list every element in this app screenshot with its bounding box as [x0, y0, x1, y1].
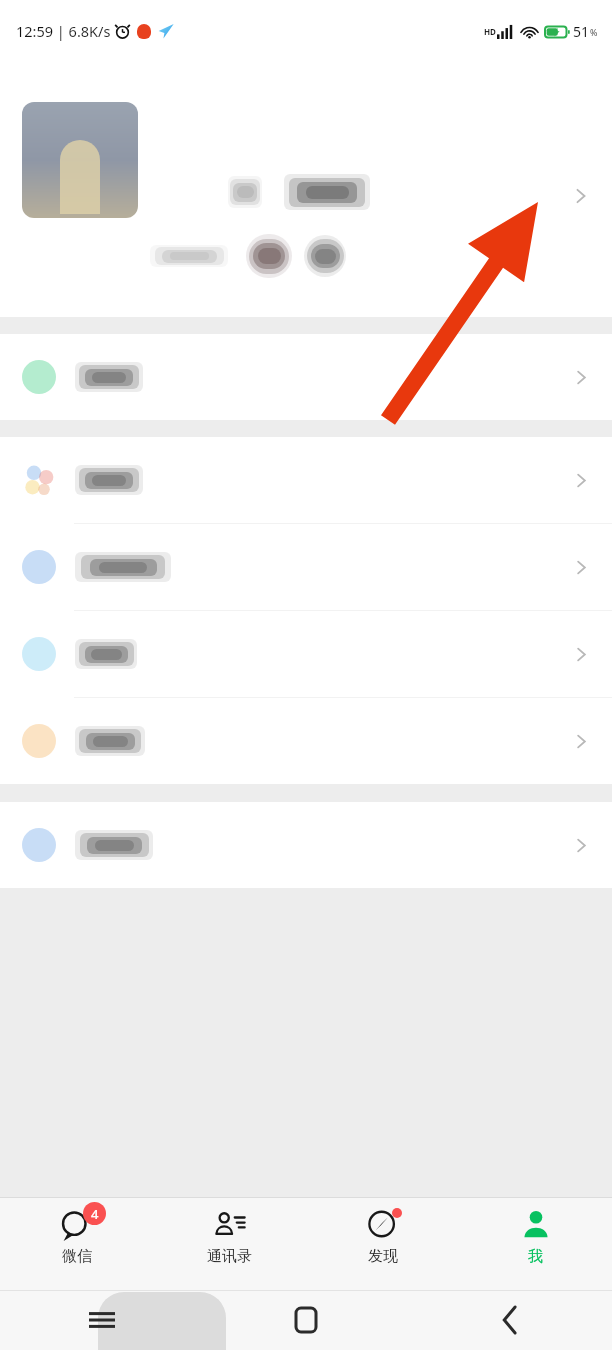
- button[interactable]: 发现: [306, 1198, 459, 1290]
- staticText: 51: [573, 22, 590, 41]
- button[interactable]: 4: [0, 1198, 153, 1290]
- staticText: 通讯录: [207, 1247, 252, 1266]
- button[interactable]: 我: [459, 1198, 612, 1290]
- button[interactable]: [0, 611, 612, 697]
- staticText: 12:59 | 6.8K/s: [16, 21, 111, 41]
- staticText: 微信: [62, 1247, 92, 1266]
- staticText: %: [590, 26, 598, 38]
- staticText: 4: [91, 1205, 99, 1223]
- button[interactable]: Home: [204, 1290, 408, 1350]
- button[interactable]: [0, 802, 612, 888]
- button[interactable]: [0, 698, 612, 784]
- staticText: 发现: [368, 1247, 398, 1266]
- staticText: HD: [484, 26, 496, 37]
- button[interactable]: [0, 524, 612, 610]
- staticText: 我: [528, 1247, 543, 1266]
- button[interactable]: 通讯录: [153, 1198, 306, 1290]
- button[interactable]: Back: [408, 1290, 612, 1350]
- button[interactable]: [0, 437, 612, 523]
- button[interactable]: [0, 334, 612, 420]
- button[interactable]: Recent apps: [0, 1290, 204, 1350]
- button[interactable]: [0, 62, 612, 317]
